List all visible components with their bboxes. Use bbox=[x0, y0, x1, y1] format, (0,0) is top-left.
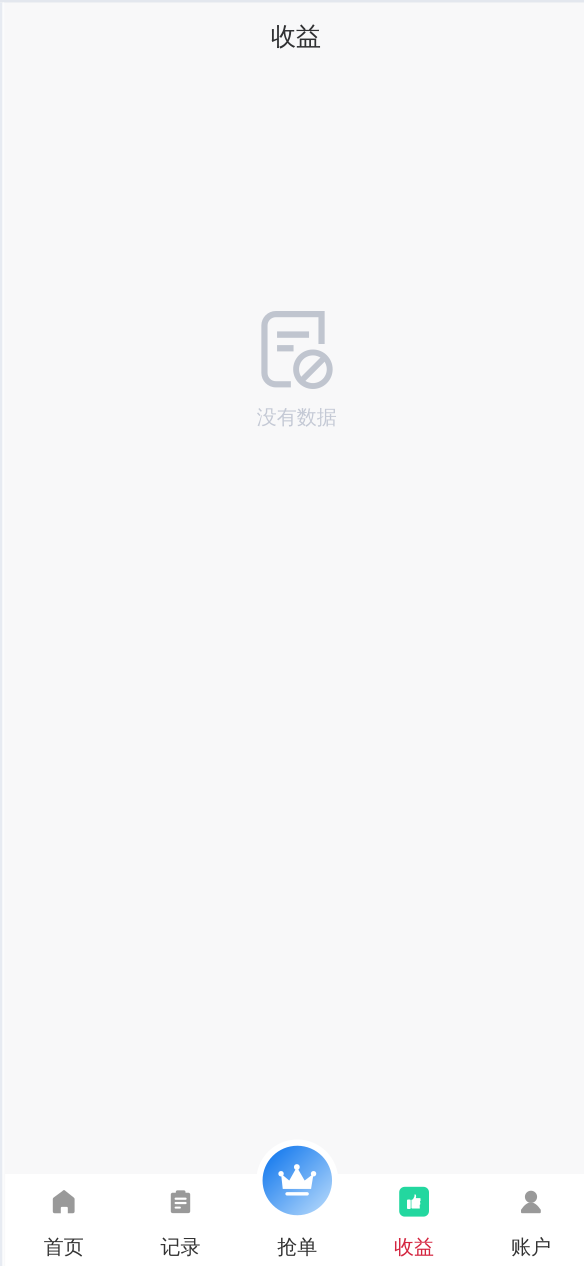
button[interactable]: 记录 bbox=[122, 1174, 239, 1266]
button[interactable]: 抢单 bbox=[256, 1139, 338, 1221]
button[interactable]: 收益 bbox=[356, 1174, 472, 1266]
button[interactable]: 账户 bbox=[472, 1174, 584, 1266]
button[interactable]: 抢单 bbox=[239, 1174, 356, 1266]
staticText: 收益 bbox=[394, 1235, 434, 1259]
staticText: 记录 bbox=[160, 1235, 200, 1259]
staticText: 收益 bbox=[271, 21, 321, 52]
staticText: 账户 bbox=[511, 1235, 551, 1259]
staticText: 抢单 bbox=[277, 1235, 317, 1259]
staticText: 首页 bbox=[44, 1235, 84, 1259]
staticText: 没有数据 bbox=[257, 405, 337, 430]
button[interactable]: 首页 bbox=[5, 1174, 122, 1266]
